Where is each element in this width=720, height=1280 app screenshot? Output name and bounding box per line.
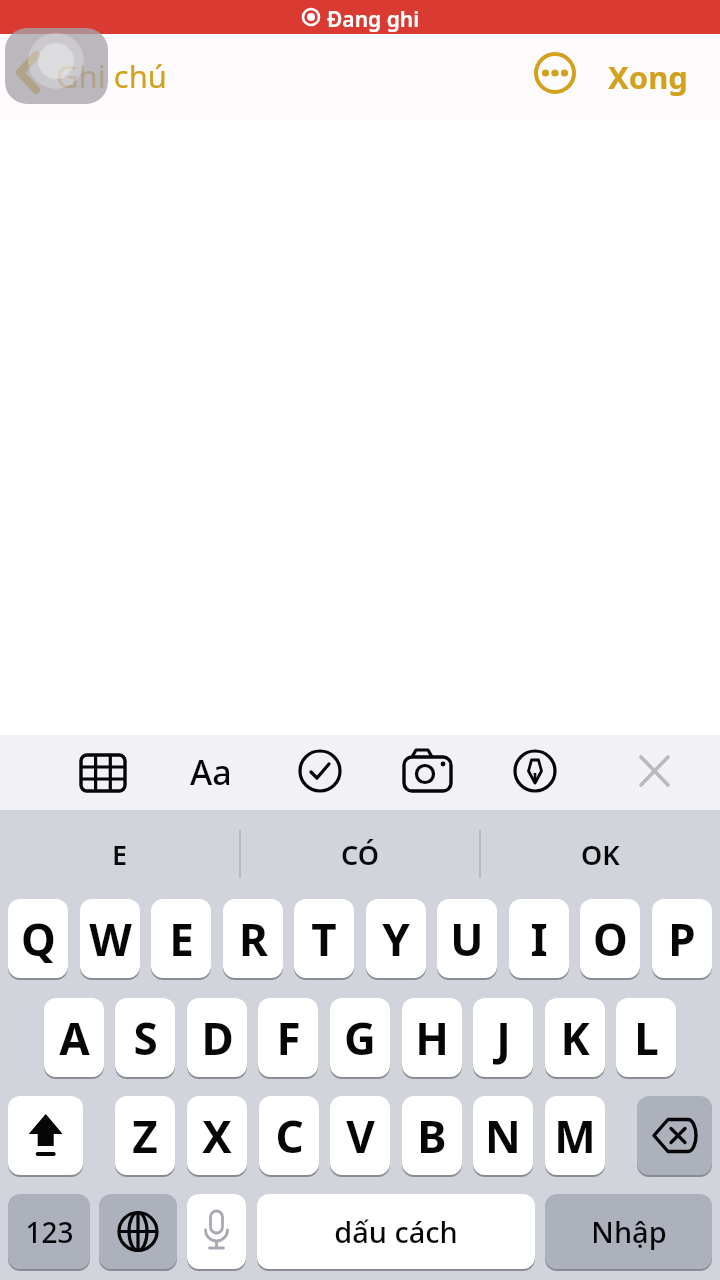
staticText: U (450, 909, 484, 969)
button[interactable]: G (330, 998, 390, 1077)
staticText: B (417, 1106, 447, 1166)
button[interactable]: U (437, 899, 497, 978)
button[interactable]: H (402, 998, 462, 1077)
button[interactable] (240, 735, 360, 810)
button[interactable]: 123 (8, 1194, 90, 1269)
button[interactable]: X (187, 1096, 247, 1175)
staticText: W (89, 909, 132, 969)
button[interactable]: V (330, 1096, 390, 1175)
button[interactable]: I (509, 899, 569, 978)
button[interactable]: Q (8, 899, 68, 978)
staticText: M (554, 1106, 596, 1166)
staticText: I (530, 909, 548, 969)
button[interactable]: S (115, 998, 175, 1077)
button[interactable]: O (580, 899, 640, 978)
staticText: T (311, 909, 337, 969)
staticText: CÓ (341, 836, 379, 873)
staticText: Đang ghi (327, 5, 420, 34)
button[interactable]: B (402, 1096, 462, 1175)
button[interactable]: T (294, 899, 354, 978)
button[interactable] (0, 735, 120, 810)
button[interactable] (480, 735, 600, 810)
button[interactable] (187, 1194, 246, 1269)
button[interactable]: P (652, 899, 712, 978)
button[interactable]: F (258, 998, 318, 1077)
staticText: E (112, 836, 128, 873)
button[interactable]: W (80, 899, 140, 978)
button[interactable]: OK (480, 810, 720, 898)
button[interactable]: L (616, 998, 676, 1077)
staticText: K (560, 1008, 590, 1068)
button[interactable]: D (187, 998, 247, 1077)
button[interactable]: Nhập (545, 1194, 712, 1269)
button[interactable]: Ghi chú (56, 55, 167, 97)
button[interactable] (600, 735, 720, 810)
button[interactable]: Xong (608, 56, 688, 98)
staticText: P (668, 909, 696, 969)
staticText: OK (581, 836, 620, 873)
staticText: R (239, 909, 268, 969)
staticText: 123 (25, 1213, 74, 1251)
staticText: A (59, 1008, 90, 1068)
button[interactable]: CÓ (240, 810, 480, 898)
button[interactable]: Z (115, 1096, 175, 1175)
staticText: C (275, 1106, 304, 1166)
button[interactable]: K (545, 998, 605, 1077)
staticText: G (344, 1008, 376, 1068)
staticText: O (593, 909, 628, 969)
button[interactable]: R (223, 899, 283, 978)
staticText: D (201, 1008, 234, 1068)
button[interactable] (5, 28, 108, 104)
staticText: H (415, 1008, 449, 1068)
button[interactable]: C (259, 1096, 319, 1175)
staticText: F (276, 1008, 301, 1068)
staticText: dấu cách (334, 1212, 458, 1251)
button[interactable]: dấu cách (257, 1194, 535, 1269)
staticText: E (169, 909, 194, 969)
button[interactable] (99, 1194, 177, 1269)
staticText: N (485, 1106, 521, 1166)
staticText: X (202, 1106, 232, 1166)
button[interactable]: A (44, 998, 104, 1077)
staticText: J (496, 1008, 511, 1068)
button[interactable]: Y (366, 899, 426, 978)
staticText: Z (132, 1106, 158, 1166)
button[interactable] (120, 735, 240, 810)
button[interactable]: J (473, 998, 533, 1077)
button[interactable] (637, 1096, 712, 1175)
button[interactable] (8, 1096, 83, 1175)
button[interactable]: E (151, 899, 211, 978)
staticText: S (133, 1008, 158, 1068)
button[interactable]: M (545, 1096, 605, 1175)
staticText: Q (21, 909, 56, 969)
button[interactable] (533, 51, 577, 95)
button[interactable] (360, 735, 480, 810)
staticText: Y (382, 909, 410, 969)
button[interactable]: E (0, 810, 240, 898)
staticText: Aa (190, 749, 232, 795)
staticText: L (634, 1008, 659, 1068)
staticText: V (346, 1106, 375, 1166)
button[interactable]: N (473, 1096, 533, 1175)
button[interactable]: Đang ghi (0, 0, 720, 34)
staticText: Nhập (591, 1212, 667, 1251)
